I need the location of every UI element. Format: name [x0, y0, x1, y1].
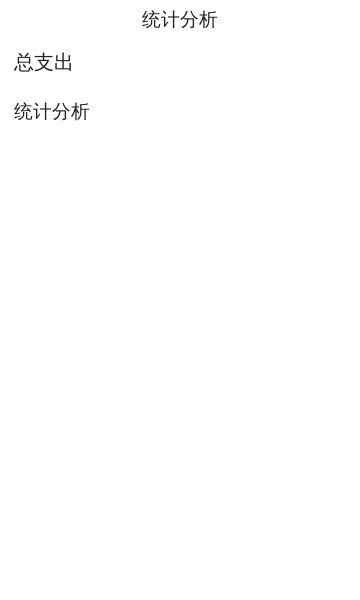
- staticText: 统计分析: [14, 100, 90, 123]
- staticText: 统计分析: [142, 8, 218, 31]
- staticText: 总支出: [14, 50, 74, 75]
